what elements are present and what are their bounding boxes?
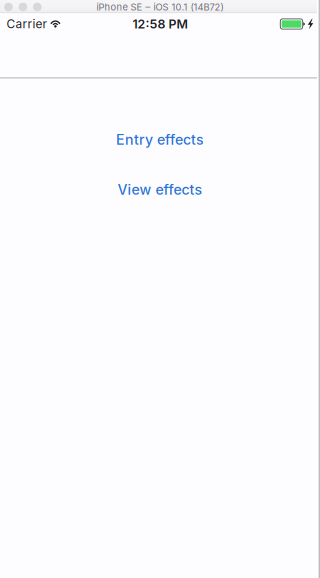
- button[interactable]: View effects: [0, 181, 320, 198]
- staticText: View effects: [117, 181, 202, 198]
- button[interactable]: Entry effects: [0, 131, 320, 148]
- staticText: Carrier: [7, 17, 47, 31]
- staticText: iPhone SE – iOS 10.1 (14B72): [96, 1, 223, 13]
- staticText: 12:58 PM: [132, 16, 187, 31]
- staticText: Entry effects: [116, 131, 204, 148]
